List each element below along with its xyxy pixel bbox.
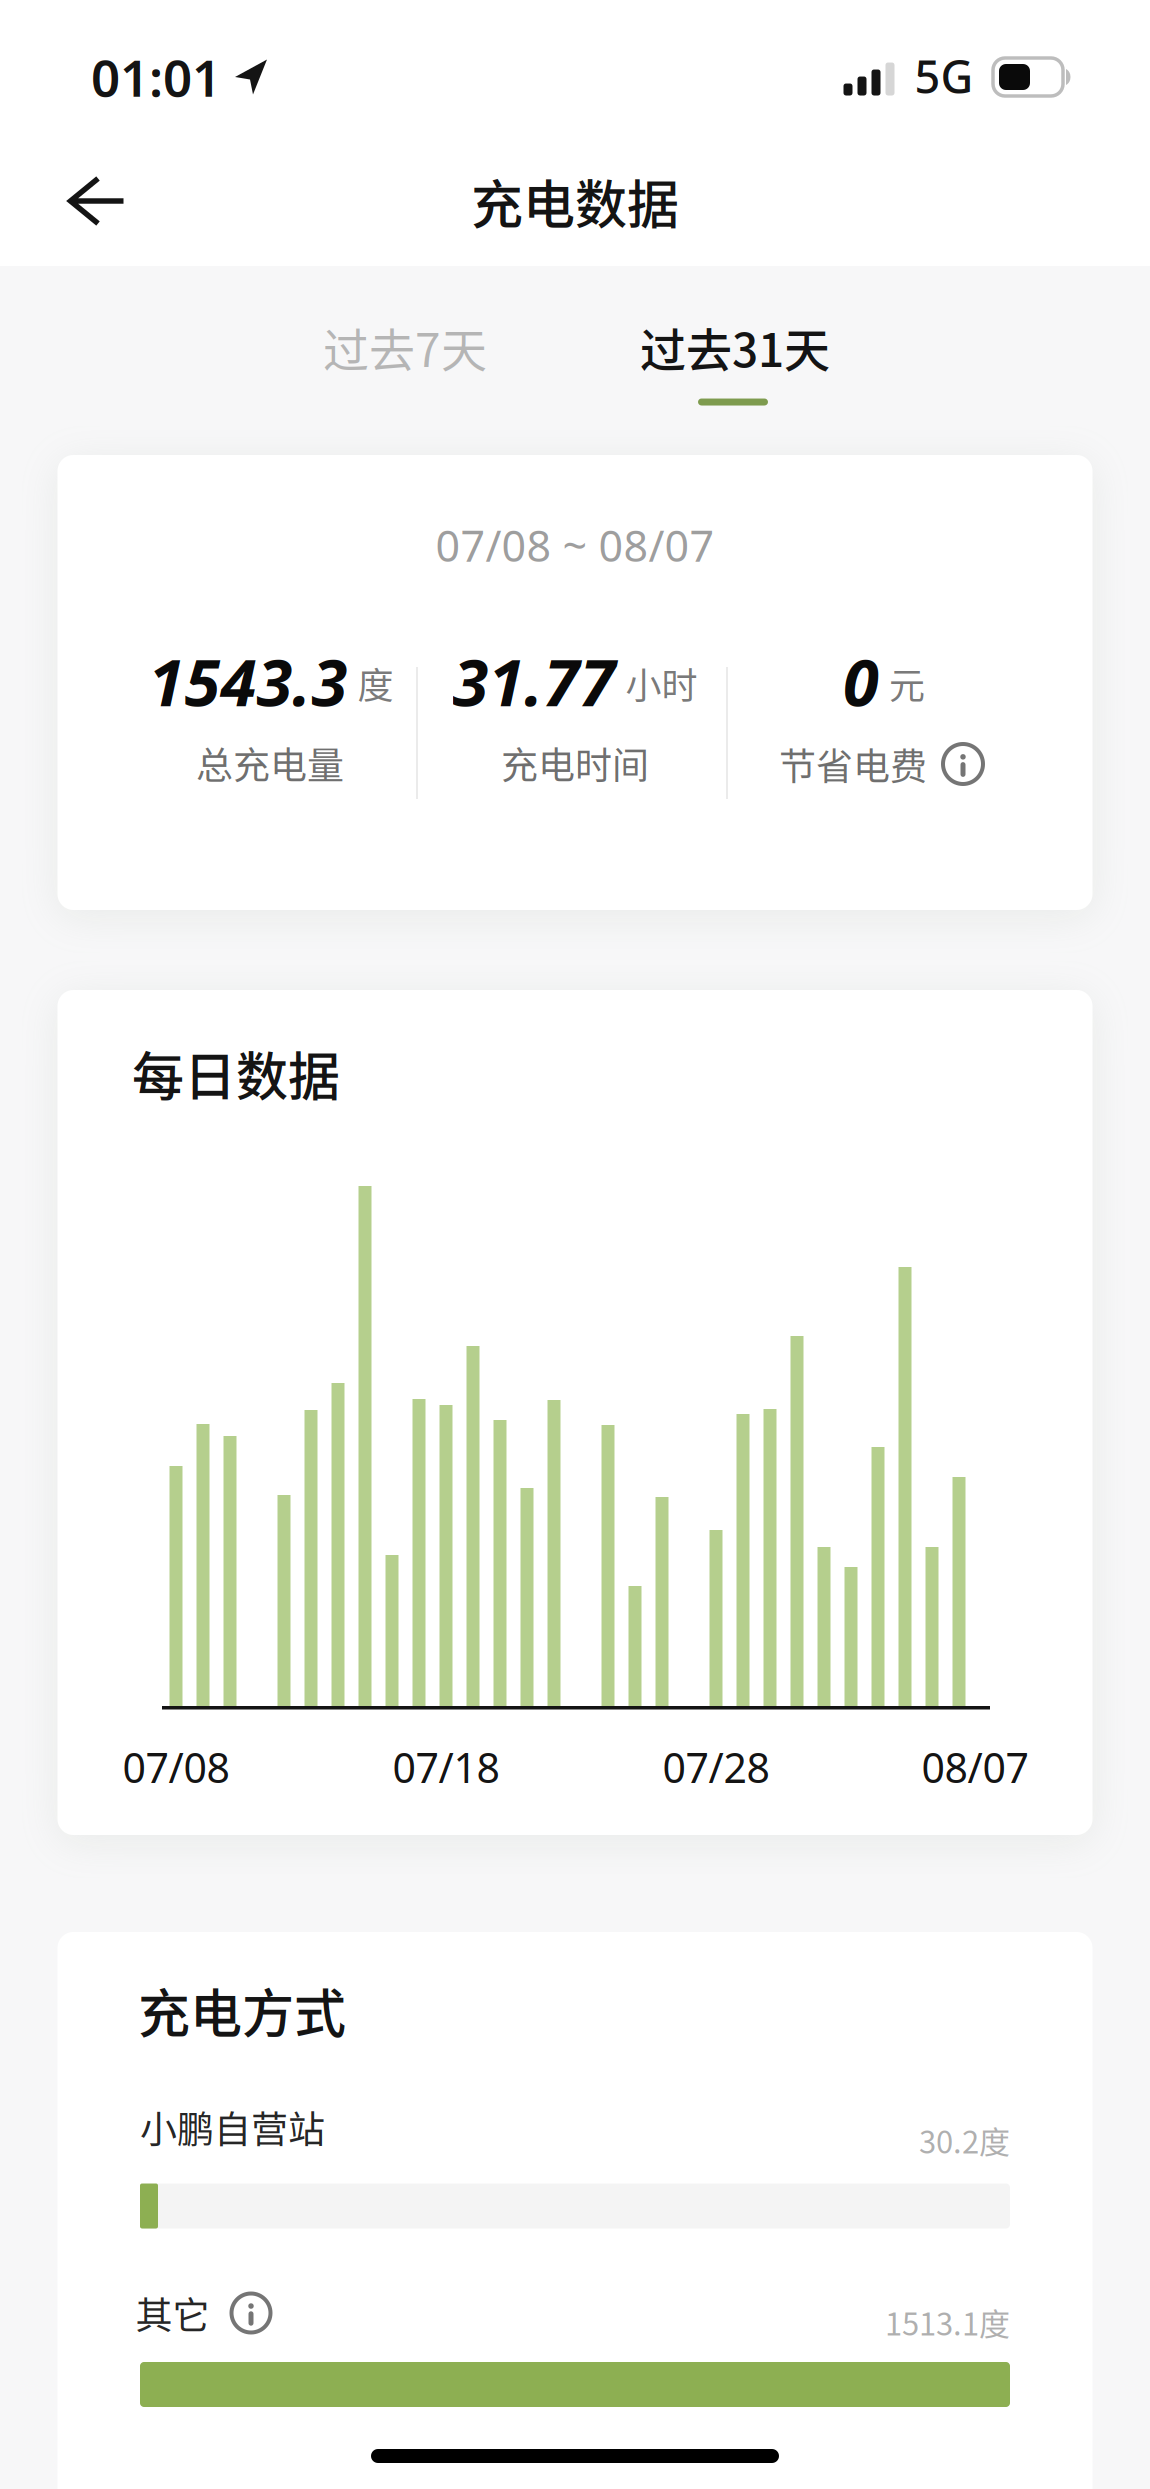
button[interactable]: 过去31天 bbox=[620, 304, 850, 390]
staticText: 08/07 bbox=[921, 1739, 1028, 1795]
staticText: 小鹏自营站 bbox=[140, 2100, 325, 2154]
button[interactable]: 其它说明 bbox=[231, 2293, 270, 2332]
button[interactable]: 过去7天 bbox=[303, 304, 507, 390]
staticText: 每日数据 bbox=[132, 1035, 340, 1111]
staticText: 30.2度 bbox=[919, 2118, 1010, 2162]
button[interactable]: Back bbox=[51, 161, 141, 241]
staticText: 充电数据 bbox=[471, 163, 679, 239]
staticText: 小时 bbox=[625, 657, 697, 709]
staticText: 其它 bbox=[135, 2286, 209, 2340]
staticText: 过去31天 bbox=[640, 314, 830, 380]
staticText: 07/28 bbox=[662, 1739, 769, 1795]
button[interactable]: 节省电费说明 bbox=[779, 737, 983, 791]
staticText: 5G bbox=[914, 45, 973, 107]
staticText: 1513.1度 bbox=[885, 2300, 1010, 2344]
staticText: 总充电量 bbox=[196, 736, 344, 790]
staticText: 度 bbox=[357, 657, 393, 709]
staticText: 07/18 bbox=[392, 1739, 499, 1795]
staticText: 01:01 bbox=[91, 42, 221, 112]
staticText: 充电方式 bbox=[138, 1972, 346, 2048]
staticText: 过去7天 bbox=[323, 314, 487, 380]
staticText: 07/08 ~ 08/07 bbox=[435, 516, 714, 574]
staticText: 0 bbox=[843, 637, 879, 725]
staticText: 31.77 bbox=[452, 637, 615, 725]
staticText: 1543.3 bbox=[148, 637, 347, 725]
staticText: 节省电费 bbox=[779, 737, 927, 791]
staticText: 07/08 bbox=[122, 1739, 229, 1795]
staticText: 元 bbox=[889, 657, 925, 709]
staticText: 充电时间 bbox=[501, 736, 649, 790]
